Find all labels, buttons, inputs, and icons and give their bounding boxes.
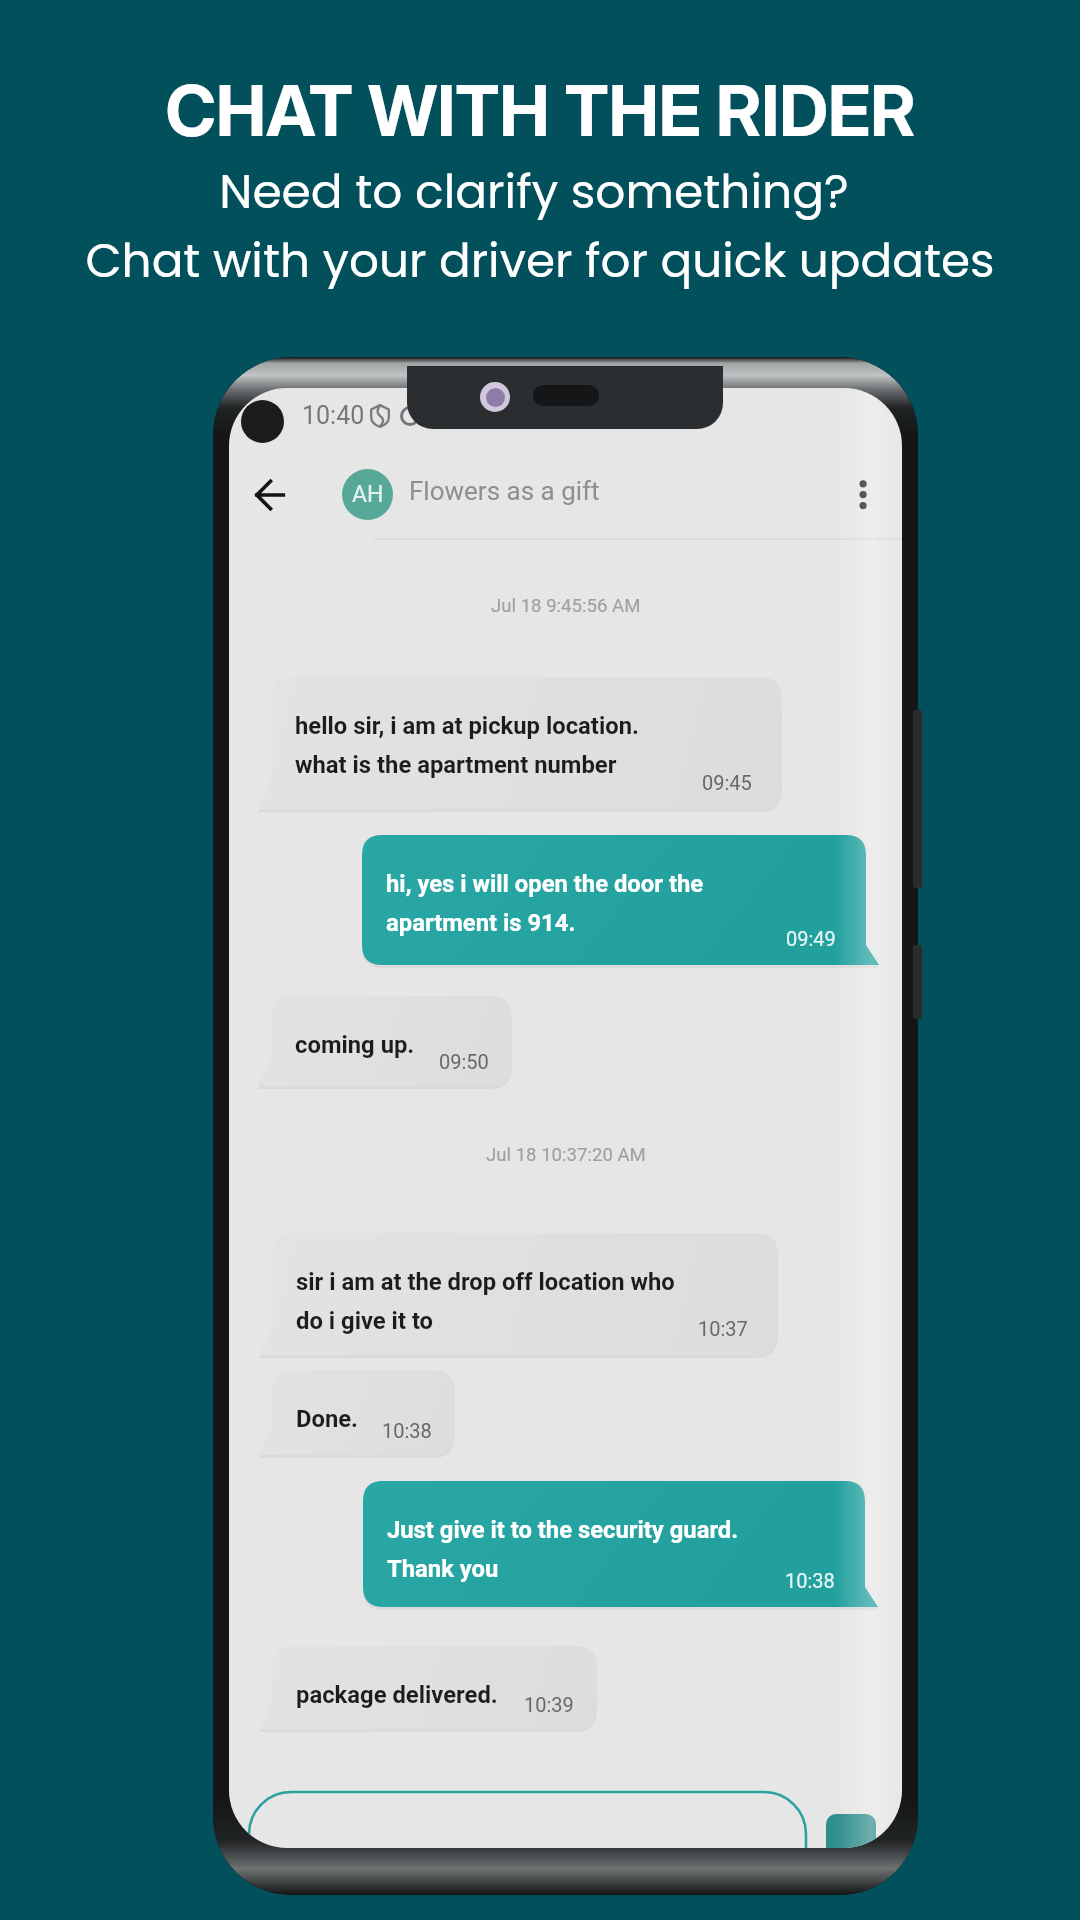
staticText: 09:49 bbox=[786, 927, 836, 950]
staticText: do i give it to bbox=[296, 1307, 434, 1335]
staticText: Done. bbox=[296, 1405, 359, 1433]
button[interactable]: sir i am at the drop off location who bbox=[256, 1233, 794, 1355]
button[interactable]: More options bbox=[843, 472, 883, 518]
staticText: apartment is 914. bbox=[386, 909, 576, 937]
button[interactable]: coming up. bbox=[255, 996, 528, 1086]
staticText: Chat with your driver for quick updates bbox=[85, 228, 995, 294]
staticText: 10:38 bbox=[382, 1419, 432, 1442]
staticText: Just give it to the security guard. bbox=[387, 1516, 739, 1544]
button[interactable]: Done. bbox=[256, 1370, 471, 1455]
staticText: 10:40 bbox=[302, 401, 365, 430]
staticText: hello sir, i am at pickup location. bbox=[295, 712, 639, 740]
staticText: Need to clarify something? bbox=[219, 159, 849, 225]
button[interactable]: hi, yes i will open the door the bbox=[346, 835, 882, 965]
staticText: Jul 18 9:45:56 AM bbox=[491, 595, 641, 617]
button[interactable]: Back bbox=[245, 473, 295, 517]
staticText: 09:45 bbox=[702, 771, 752, 794]
staticText: package delivered. bbox=[296, 1681, 498, 1709]
button[interactable]: hello sir, i am at pickup location. bbox=[255, 677, 798, 809]
staticText: 09:50 bbox=[439, 1050, 489, 1073]
staticText: 10:38 bbox=[785, 1569, 835, 1592]
staticText: 10:37 bbox=[698, 1317, 748, 1340]
staticText: Thank you bbox=[387, 1555, 499, 1583]
button[interactable]: Message input bbox=[249, 1792, 806, 1848]
staticText: 10:39 bbox=[524, 1693, 574, 1716]
staticText: sir i am at the drop off location who bbox=[296, 1268, 675, 1296]
staticText: Flowers as a gift bbox=[409, 476, 600, 506]
staticText: hi, yes i will open the door the bbox=[386, 870, 704, 898]
staticText: CHAT WITH THE RIDER bbox=[165, 69, 916, 153]
staticText: what is the apartment number bbox=[295, 751, 617, 779]
staticText: AH bbox=[352, 481, 384, 508]
button[interactable]: package delivered. bbox=[256, 1646, 613, 1729]
staticText: coming up. bbox=[295, 1031, 415, 1059]
button[interactable]: Just give it to the security guard. bbox=[347, 1481, 881, 1607]
staticText: Jul 18 10:37:20 AM bbox=[486, 1144, 646, 1166]
button[interactable]: Send bbox=[826, 1814, 876, 1848]
